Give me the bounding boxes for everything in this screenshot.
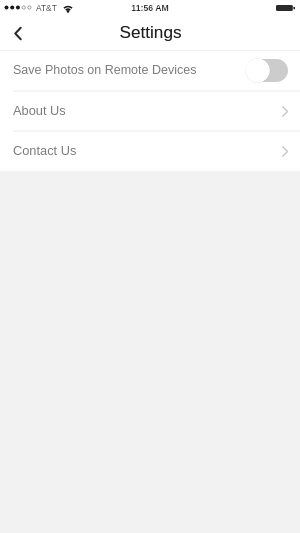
staticText: Settings bbox=[119, 22, 182, 41]
staticText: AT&T bbox=[36, 3, 57, 12]
button[interactable]: Save Photos on Remote Devices bbox=[0, 51, 300, 90]
staticText: Save Photos on Remote Devices bbox=[13, 63, 197, 77]
button[interactable]: Back bbox=[0, 15, 36, 51]
staticText: About Us bbox=[13, 103, 66, 117]
staticText: Settings bbox=[119, 22, 182, 41]
staticText: Contact Us bbox=[13, 143, 77, 157]
button[interactable]: About Us bbox=[0, 92, 300, 130]
button[interactable]: Contact Us bbox=[0, 132, 300, 171]
staticText: 11:56 AM bbox=[131, 3, 169, 13]
